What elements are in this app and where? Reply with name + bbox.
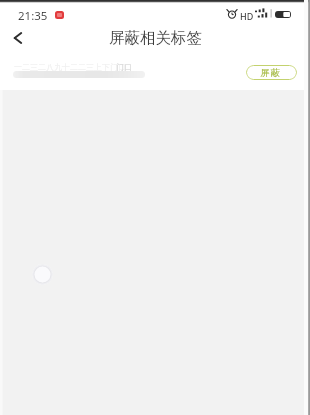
- staticText: 21:35: [18, 8, 48, 24]
- staticText: HD: [240, 10, 254, 22]
- staticText: 屏蔽: [260, 67, 282, 79]
- staticText: 一二三二八九十二二三上下门口: [14, 62, 126, 72]
- staticText: 屏蔽相关标签: [109, 28, 202, 48]
- button[interactable]: Back: [5, 25, 31, 51]
- button[interactable]: Scroll to top: [32, 264, 53, 285]
- staticText: 门口: [116, 62, 132, 72]
- button[interactable]: 屏蔽: [246, 65, 297, 80]
